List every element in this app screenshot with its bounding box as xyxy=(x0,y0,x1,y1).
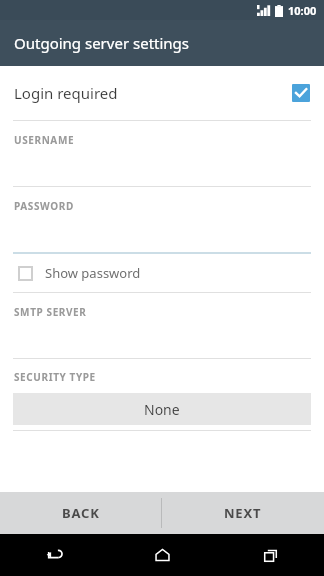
button[interactable]: None xyxy=(13,393,311,425)
button[interactable]: Back xyxy=(0,534,108,576)
staticText: 10:00 xyxy=(288,3,317,18)
staticText: NEXT xyxy=(224,504,262,522)
button[interactable]: PASSWORD xyxy=(0,187,324,254)
staticText: Show password xyxy=(45,264,141,282)
staticText: PASSWORD xyxy=(14,199,74,213)
button[interactable]: SMTP SERVER xyxy=(0,293,324,359)
staticText: SMTP SERVER xyxy=(14,305,87,319)
staticText: None xyxy=(144,400,180,419)
button[interactable]: BACK xyxy=(0,492,161,534)
staticText: Login required xyxy=(14,83,292,103)
staticText: Outgoing server settings xyxy=(14,33,190,53)
staticText: USERNAME xyxy=(14,133,75,147)
button[interactable]: Recent apps xyxy=(216,534,324,576)
button[interactable]: Login required xyxy=(0,66,324,120)
staticText: BACK xyxy=(62,504,100,522)
button[interactable]: Home xyxy=(108,534,216,576)
button[interactable]: Show password xyxy=(0,254,324,292)
staticText: SECURITY TYPE xyxy=(14,370,96,384)
button[interactable]: USERNAME xyxy=(0,121,324,187)
button[interactable]: NEXT xyxy=(162,492,324,534)
